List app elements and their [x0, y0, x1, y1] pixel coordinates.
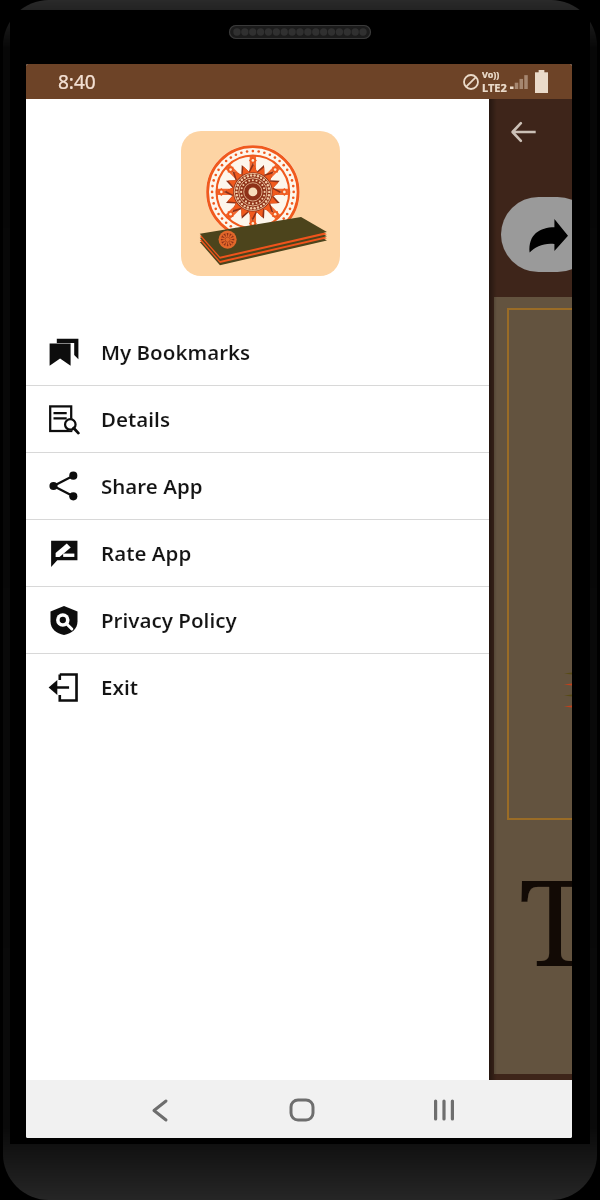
staticText: Vo)): [482, 68, 500, 80]
staticText: Details: [101, 405, 171, 433]
button[interactable]: My Bookmarks: [26, 319, 489, 385]
button[interactable]: Back: [132, 1082, 188, 1138]
staticText: Exit: [101, 673, 139, 701]
staticText: LTE2: [482, 80, 507, 95]
button[interactable]: Home: [274, 1082, 330, 1138]
button[interactable]: Details: [26, 386, 489, 452]
staticText: 8:40: [58, 69, 96, 95]
button[interactable]: Recent apps: [416, 1082, 472, 1138]
staticText: My Bookmarks: [101, 338, 251, 366]
staticText: The: [519, 840, 572, 1001]
staticText: Share App: [101, 472, 203, 500]
button[interactable]: Exit: [26, 654, 489, 720]
staticText: Privacy Policy: [101, 606, 237, 634]
button[interactable]: Back: [502, 110, 546, 154]
staticText: Rate App: [101, 539, 192, 567]
button[interactable]: Share: [501, 197, 572, 272]
button[interactable]: Share App: [26, 453, 489, 519]
button[interactable]: Privacy Policy: [26, 587, 489, 653]
button[interactable]: Rate App: [26, 520, 489, 586]
